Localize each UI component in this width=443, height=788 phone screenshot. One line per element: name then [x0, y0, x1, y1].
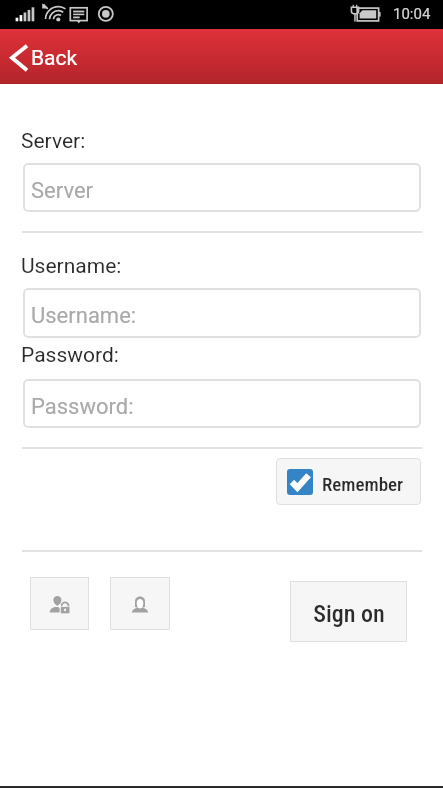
button[interactable]: Server — [23, 163, 421, 212]
button[interactable]: Choose contact — [110, 577, 170, 630]
button[interactable]: Saved credentials — [30, 577, 89, 630]
button[interactable]: Password: — [23, 379, 421, 428]
button[interactable]: Back — [0, 29, 96, 84]
button[interactable]: Username: — [23, 288, 421, 338]
staticText: Username: — [21, 254, 122, 279]
staticText: Sign on — [313, 600, 385, 628]
staticText: 10:04 — [393, 5, 431, 23]
staticText: Password: — [31, 394, 134, 420]
staticText: Remember — [322, 473, 404, 495]
staticText: Server: — [21, 129, 86, 154]
button[interactable]: Sign on — [290, 581, 407, 642]
button[interactable]: Remember — [276, 458, 421, 505]
staticText: Password: — [21, 343, 119, 368]
staticText: Back — [31, 46, 78, 71]
staticText: Username: — [31, 303, 137, 329]
staticText: Server — [31, 178, 94, 204]
